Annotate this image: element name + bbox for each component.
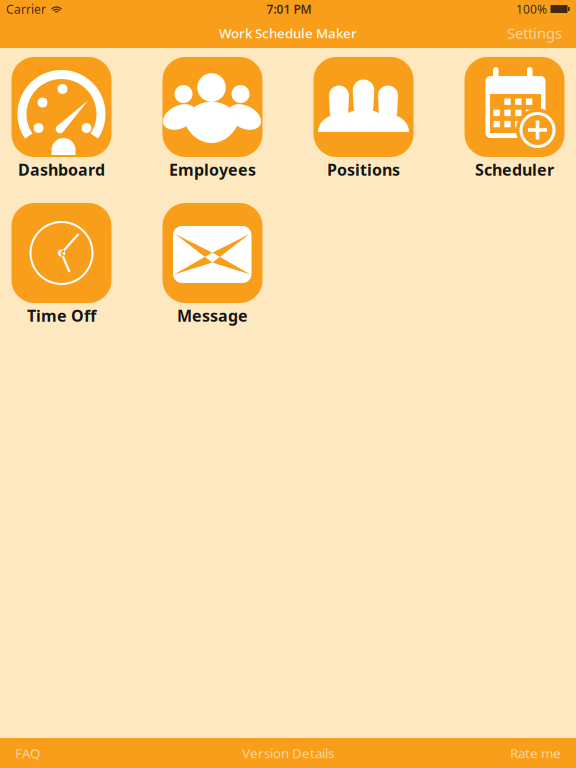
staticText: Message xyxy=(177,305,248,326)
staticText: Dashboard xyxy=(18,159,105,180)
button[interactable]: Scheduler xyxy=(439,57,576,180)
staticText: Settings xyxy=(507,23,562,43)
staticText: 7:01 PM xyxy=(266,1,311,17)
button[interactable]: FAQ xyxy=(0,738,55,768)
staticText: Version Details xyxy=(242,744,334,762)
staticText: Time Off xyxy=(27,305,96,326)
staticText: FAQ xyxy=(15,744,40,762)
staticText: Scheduler xyxy=(475,159,554,180)
button[interactable]: Settings xyxy=(493,18,576,48)
staticText: 100% xyxy=(516,1,547,17)
button[interactable]: Employees xyxy=(137,57,288,180)
button[interactable]: Rate me xyxy=(495,738,576,768)
button[interactable]: Message xyxy=(137,203,288,326)
button[interactable]: Version Details xyxy=(230,738,346,768)
staticText: Carrier xyxy=(6,1,46,17)
button[interactable]: Dashboard xyxy=(0,57,137,180)
staticText: Positions xyxy=(327,159,400,180)
button[interactable]: Time Off xyxy=(0,203,137,326)
staticText: Rate me xyxy=(510,744,561,762)
staticText: Work Schedule Maker xyxy=(219,24,357,42)
staticText: Employees xyxy=(169,159,256,180)
button[interactable]: Positions xyxy=(288,57,439,180)
